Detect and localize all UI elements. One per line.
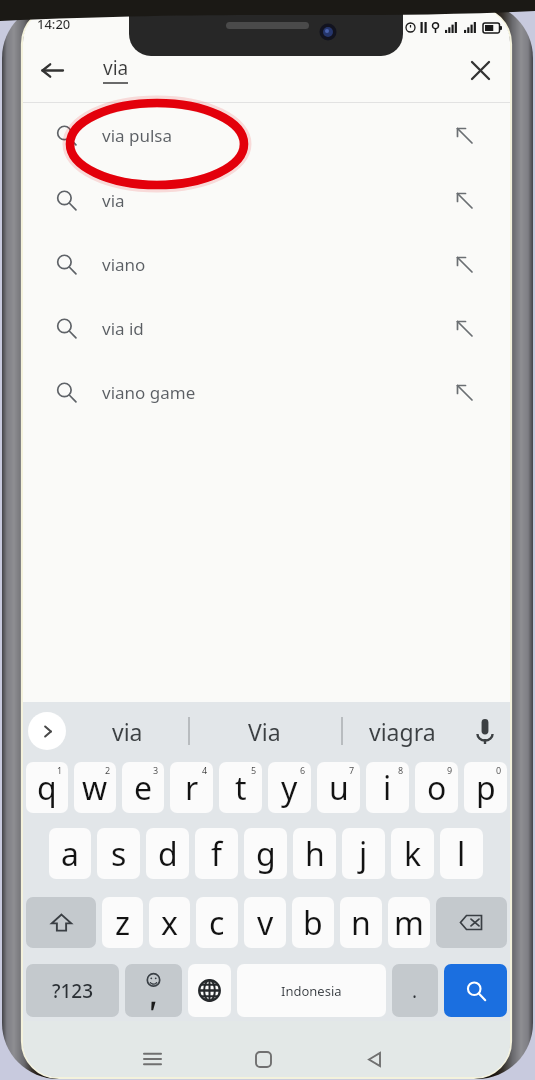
- button[interactable]: s: [97, 828, 140, 879]
- staticText: q: [37, 766, 57, 810]
- staticText: 3: [153, 764, 159, 776]
- button[interactable]: m: [388, 897, 430, 948]
- button[interactable]: v: [244, 897, 286, 948]
- staticText: Via: [248, 716, 281, 747]
- button[interactable]: c: [196, 897, 238, 948]
- staticText: z: [115, 901, 131, 945]
- button[interactable]: Change keyboard language: [188, 964, 231, 1017]
- staticText: 2: [105, 764, 111, 776]
- staticText: 6: [300, 764, 306, 776]
- staticText: x: [161, 901, 178, 945]
- staticText: d: [158, 832, 178, 876]
- button[interactable]: Emoji, comma: [125, 964, 182, 1017]
- staticText: j: [359, 832, 368, 876]
- staticText: v: [257, 901, 274, 945]
- button[interactable]: More suggestions: [28, 712, 66, 750]
- staticText: 1: [57, 764, 63, 776]
- button[interactable]: Clear search: [450, 38, 510, 102]
- staticText: f: [211, 832, 223, 876]
- staticText: c: [209, 901, 225, 945]
- staticText: b: [303, 901, 323, 945]
- button[interactable]: w: [74, 762, 116, 813]
- button[interactable]: via id: [23, 296, 510, 360]
- button[interactable]: g: [244, 828, 287, 879]
- button[interactable]: b: [292, 897, 334, 948]
- staticText: via pulsa: [102, 124, 173, 147]
- button[interactable]: o: [415, 762, 458, 813]
- button[interactable]: x: [149, 897, 190, 948]
- button[interactable]: p: [464, 762, 507, 813]
- staticText: 9: [447, 764, 453, 776]
- button[interactable]: Home: [208, 1043, 319, 1075]
- staticText: p: [476, 766, 496, 810]
- button[interactable]: viano game: [23, 360, 510, 424]
- staticText: ?123: [52, 978, 94, 1004]
- button[interactable]: k: [391, 828, 434, 879]
- staticText: g: [256, 832, 276, 876]
- staticText: s: [111, 832, 127, 876]
- button[interactable]: Shift: [26, 897, 96, 948]
- staticText: u: [329, 766, 349, 810]
- button[interactable]: i: [366, 762, 409, 813]
- button[interactable]: via: [66, 702, 188, 760]
- button[interactable]: Voice input: [464, 710, 506, 752]
- staticText: via: [103, 55, 129, 81]
- button[interactable]: n: [340, 897, 382, 948]
- staticText: w: [82, 766, 108, 810]
- button[interactable]: via pulsa: [23, 103, 510, 168]
- staticText: y: [281, 766, 298, 810]
- button[interactable]: a: [49, 828, 91, 879]
- button[interactable]: .: [392, 964, 438, 1017]
- staticText: 14:20: [37, 15, 71, 33]
- button[interactable]: u: [317, 762, 360, 813]
- button[interactable]: Back: [23, 38, 81, 102]
- button[interactable]: h: [293, 828, 336, 879]
- staticText: k: [404, 832, 422, 876]
- button[interactable]: Back: [319, 1043, 430, 1075]
- button[interactable]: z: [102, 897, 143, 948]
- staticText: h: [305, 832, 325, 876]
- staticText: o: [427, 766, 447, 810]
- button[interactable]: t: [219, 762, 262, 813]
- button[interactable]: Indonesia: [237, 964, 386, 1017]
- button[interactable]: d: [146, 828, 189, 879]
- staticText: r: [185, 766, 199, 810]
- button[interactable]: l: [440, 828, 483, 879]
- button[interactable]: Recent apps: [97, 1043, 208, 1075]
- staticText: via: [112, 716, 143, 747]
- button[interactable]: viano: [23, 232, 510, 296]
- button[interactable]: f: [195, 828, 238, 879]
- staticText: m: [394, 901, 424, 945]
- staticText: viano game: [102, 381, 196, 404]
- staticText: 4: [202, 764, 208, 776]
- button[interactable]: e: [122, 762, 164, 813]
- staticText: l: [457, 832, 466, 876]
- button[interactable]: ?123: [26, 964, 119, 1017]
- button[interactable]: r: [170, 762, 213, 813]
- staticText: via: [102, 189, 125, 212]
- button[interactable]: viagra: [341, 702, 464, 760]
- staticText: 8: [398, 764, 404, 776]
- button[interactable]: Search: [444, 964, 507, 1017]
- button[interactable]: j: [342, 828, 385, 879]
- staticText: 5: [251, 764, 257, 776]
- staticText: a: [61, 832, 79, 876]
- button[interactable]: y: [268, 762, 311, 813]
- button[interactable]: via: [23, 168, 510, 232]
- staticText: t: [235, 766, 247, 810]
- button[interactable]: Via: [188, 702, 341, 760]
- staticText: viano: [102, 253, 146, 276]
- staticText: 7: [349, 764, 355, 776]
- button[interactable]: q: [26, 762, 68, 813]
- staticText: 0: [496, 764, 502, 776]
- staticText: via id: [102, 317, 144, 340]
- staticText: .: [412, 978, 418, 1004]
- staticText: Indonesia: [281, 982, 342, 1000]
- staticText: viagra: [369, 716, 436, 747]
- staticText: n: [351, 901, 371, 945]
- button[interactable]: Backspace: [436, 897, 507, 948]
- staticText: e: [134, 766, 153, 810]
- staticText: i: [383, 766, 392, 810]
